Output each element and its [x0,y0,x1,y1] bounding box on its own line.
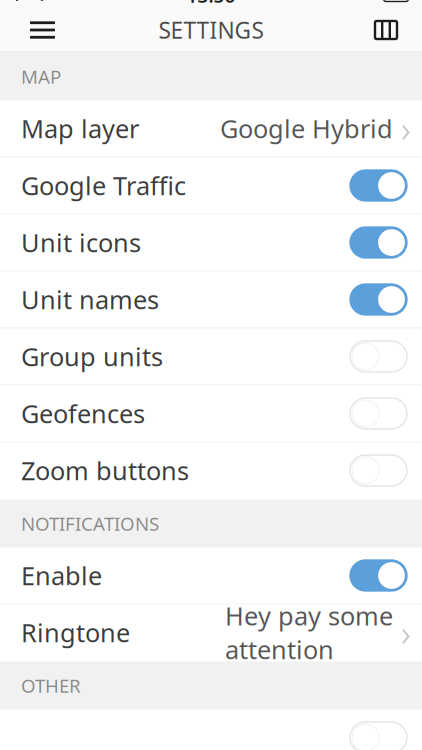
staticText: Hey pay some attention [225,599,393,666]
staticText: Unit icons [21,226,141,259]
staticText: Zoom buttons [21,454,189,487]
staticText: Google Hybrid [220,112,393,145]
button[interactable]: Map [356,8,422,52]
button[interactable]: Unit icons [0,214,422,271]
staticText: SETTINGS [158,15,263,45]
staticText: Group units [21,340,163,373]
button[interactable]: Unit names [0,271,422,328]
staticText: Google Traffic [21,169,186,202]
staticText: › [401,609,411,656]
button[interactable]: Menu [0,7,73,52]
button[interactable]: Group units [0,328,422,385]
staticText: NOTIFICATIONS [21,511,159,536]
button[interactable]: Enable [0,547,422,604]
staticText: MAP [21,64,61,89]
staticText: › [401,105,411,152]
button[interactable]: Map layer [0,100,422,157]
button[interactable]: Google Traffic [0,157,422,214]
button[interactable]: Zoom buttons [0,442,422,499]
staticText: Unit names [21,283,159,316]
staticText: 13:56 [186,0,235,8]
staticText: Map layer [21,112,139,145]
button[interactable]: Geofences [0,385,422,442]
staticText: Ringtone [21,616,130,649]
staticText: Geofences [21,397,145,430]
staticText: Enable [21,559,102,592]
button[interactable]: Ringtone [0,604,422,661]
staticText: OTHER [21,673,81,698]
